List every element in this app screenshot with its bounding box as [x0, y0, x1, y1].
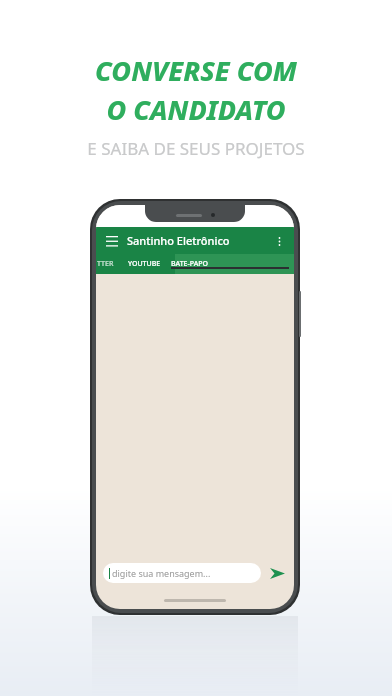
button[interactable]: Menu: [103, 232, 121, 250]
staticText: O CANDIDATO: [106, 91, 286, 128]
button[interactable]: Send: [267, 563, 287, 583]
button[interactable]: More options: [270, 232, 288, 250]
staticText: digite sua mensagem...: [112, 567, 211, 579]
staticText: E SAIBA DE SEUS PROJETOS: [87, 137, 305, 160]
button[interactable]: YOUTUBE: [123, 259, 166, 269]
staticText: CONVERSE COM: [95, 52, 297, 89]
button[interactable]: digite sua mensagem...: [103, 563, 261, 583]
staticText: YOUTUBE: [128, 259, 161, 269]
staticText: BATE-PAPO: [171, 259, 209, 269]
staticText: Santinho Eletrônico: [127, 233, 230, 248]
button[interactable]: TTER: [96, 259, 119, 269]
button[interactable]: BATE-PAPO: [166, 259, 214, 269]
staticText: TTER: [97, 259, 114, 269]
